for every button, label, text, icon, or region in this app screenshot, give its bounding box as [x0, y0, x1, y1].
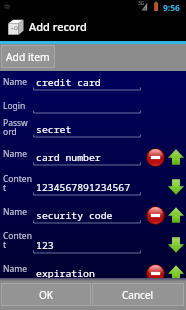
button[interactable]: OK: [2, 284, 90, 305]
button[interactable]: Remove item: [146, 206, 165, 225]
button[interactable]: expiration: [33, 263, 141, 283]
staticText: card number: [36, 151, 101, 164]
button[interactable]: Move up: [168, 265, 184, 281]
staticText: 9:56: [163, 2, 180, 14]
button[interactable]: [33, 95, 141, 115]
staticText: Name: [3, 263, 27, 275]
staticText: Content: [3, 173, 32, 194]
button[interactable]: Remove item: [146, 148, 165, 167]
button[interactable]: Cancel: [93, 284, 183, 305]
button[interactable]: credit card: [33, 72, 141, 92]
button[interactable]: Move up: [168, 207, 184, 223]
staticText: Add item: [6, 50, 50, 64]
staticText: Login: [3, 100, 26, 112]
button[interactable]: Move down: [168, 237, 184, 253]
staticText: Add record: [29, 19, 87, 34]
staticText: Name: [3, 76, 27, 88]
staticText: secret: [36, 123, 72, 136]
staticText: Content: [3, 230, 32, 251]
button[interactable]: 123: [33, 235, 141, 255]
staticText: Name: [3, 206, 27, 218]
staticText: 1234567891234567: [36, 181, 131, 194]
button[interactable]: secret: [33, 119, 141, 139]
staticText: expiration: [36, 267, 95, 280]
staticText: 123: [36, 239, 54, 252]
button[interactable]: Add item: [2, 46, 54, 67]
staticText: Cancel: [122, 288, 154, 302]
button[interactable]: 1234567891234567: [33, 177, 141, 197]
button[interactable]: security code: [33, 205, 141, 225]
staticText: OK: [39, 288, 53, 302]
button[interactable]: Move down: [168, 179, 184, 195]
staticText: 3G: [138, 0, 145, 7]
staticText: credit card: [36, 76, 101, 89]
button[interactable]: Remove item: [146, 264, 165, 283]
staticText: Name: [3, 148, 27, 160]
staticText: Password: [3, 117, 32, 138]
button[interactable]: card number: [33, 147, 141, 167]
button[interactable]: Move up: [168, 149, 184, 165]
staticText: security code: [36, 209, 113, 222]
